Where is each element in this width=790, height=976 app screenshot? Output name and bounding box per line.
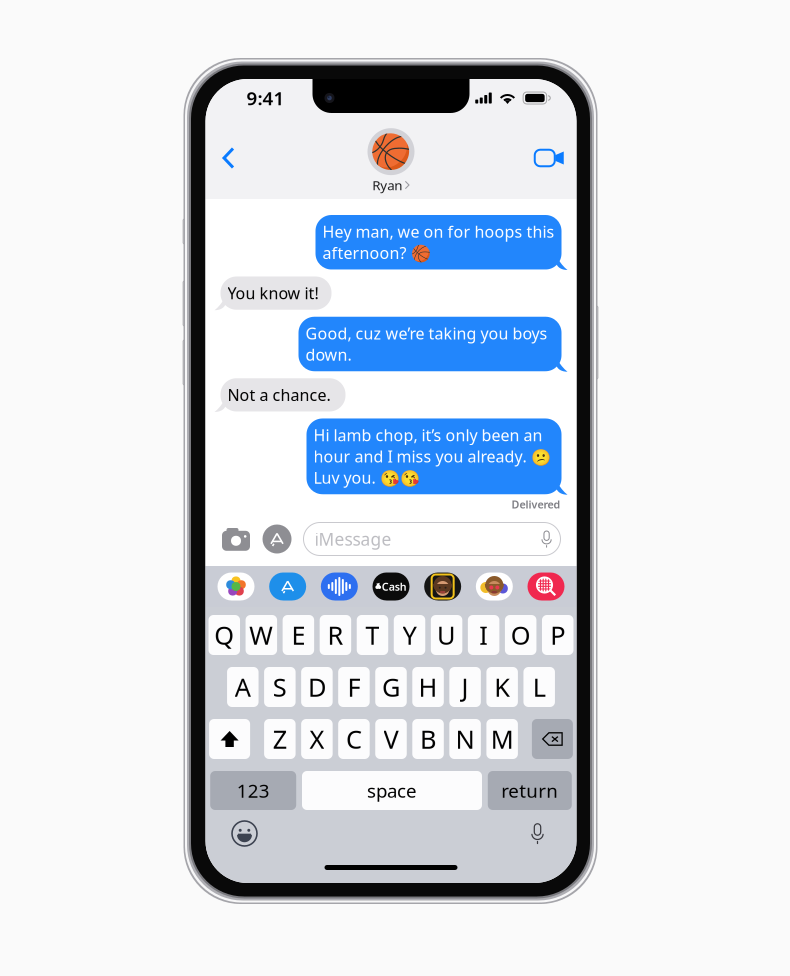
staticText: Cash [382, 579, 407, 594]
button[interactable]: Camera [221, 528, 250, 550]
staticText: D [308, 670, 326, 704]
button[interactable]: M [486, 719, 518, 759]
button[interactable]: Stickers [476, 572, 513, 600]
staticText: You know it! [227, 282, 318, 304]
button[interactable]: Shift [209, 719, 250, 759]
button[interactable]: return [488, 771, 572, 810]
button[interactable]: Images [527, 572, 564, 600]
button[interactable]: S [264, 667, 296, 707]
button[interactable]: C [338, 719, 370, 759]
staticText: G [382, 670, 400, 704]
button[interactable]: B [412, 719, 444, 759]
staticText: Z [273, 722, 287, 756]
staticText: 9:41 [246, 86, 284, 110]
button[interactable]: space [302, 771, 482, 810]
button[interactable]: I [468, 615, 499, 655]
button[interactable]: Photos [217, 572, 254, 600]
button[interactable]: Delete [532, 719, 573, 759]
staticText: H [419, 670, 438, 704]
button[interactable]: G [375, 667, 407, 707]
staticText: Hey man, we on for hoops this afternoon?… [322, 221, 554, 263]
button[interactable]: 🏀 [367, 122, 414, 194]
staticText: W [249, 618, 273, 652]
staticText: Y [402, 618, 416, 652]
button[interactable]: D [301, 667, 333, 707]
staticText: V [383, 722, 398, 756]
staticText: T [365, 618, 379, 652]
staticText: iMessage [314, 527, 391, 550]
staticText: Not a chance. [227, 384, 330, 405]
staticText: Delivered [511, 497, 560, 511]
button[interactable]: H [412, 667, 444, 707]
button[interactable]: Apple Cash [372, 572, 409, 600]
button[interactable]: U [431, 615, 462, 655]
button[interactable]: T [357, 615, 388, 655]
staticText: C [346, 722, 362, 756]
staticText: E [291, 618, 305, 652]
button[interactable]: V [375, 719, 407, 759]
staticText: L [533, 670, 546, 704]
staticText: J [462, 670, 469, 704]
staticText: F [347, 670, 360, 704]
button[interactable]: Audio Messages [321, 572, 358, 600]
button[interactable]: J [449, 667, 481, 707]
button[interactable]: Dictate [524, 820, 550, 846]
staticText: space [367, 778, 417, 803]
button[interactable]: Apps [262, 524, 291, 553]
button[interactable]: F [338, 667, 370, 707]
staticText: P [550, 618, 565, 652]
staticText: N [456, 722, 475, 756]
staticText: M [491, 722, 514, 756]
staticText: K [494, 670, 510, 704]
staticText: O [511, 618, 531, 652]
button[interactable]: iMessage [303, 522, 560, 555]
button[interactable]: O [505, 615, 536, 655]
button[interactable]: A [227, 667, 259, 707]
staticText: X [309, 722, 324, 756]
button[interactable]: X [301, 719, 333, 759]
staticText: return [501, 778, 558, 803]
button[interactable]: Y [394, 615, 425, 655]
button[interactable]: N [449, 719, 481, 759]
button[interactable]: Memoji Stickers [424, 572, 461, 600]
staticText: I [479, 618, 488, 652]
staticText: S [273, 670, 287, 704]
staticText: U [437, 618, 456, 652]
staticText: 🏀 [370, 133, 412, 171]
staticText: Hi lamb chop, it’s only been an hour and… [313, 424, 550, 488]
staticText: A [235, 670, 251, 704]
button[interactable]: P [542, 615, 573, 655]
staticText: Ryan [372, 176, 402, 194]
button[interactable]: Back [212, 133, 244, 183]
staticText: R [327, 618, 343, 652]
button[interactable]: Q [208, 615, 240, 655]
staticText: 123 [237, 778, 270, 803]
button[interactable]: App Store [269, 572, 306, 600]
button[interactable]: Emoji keyboard [231, 820, 257, 846]
staticText: B [420, 722, 436, 756]
button[interactable]: FaceTime video call [520, 136, 569, 180]
staticText: Good, cuz we’re taking you boys down. [305, 323, 547, 365]
button[interactable]: E [283, 615, 314, 655]
button[interactable]: 123 [210, 771, 296, 810]
button[interactable]: L [523, 667, 555, 707]
button[interactable]: W [246, 615, 277, 655]
staticText: Q [214, 618, 234, 652]
button[interactable]: Z [264, 719, 296, 759]
button[interactable]: R [320, 615, 351, 655]
button[interactable]: K [486, 667, 518, 707]
